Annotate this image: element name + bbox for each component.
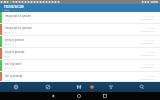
staticText: 09:44	[5, 67, 10, 70]
staticText: 09:44	[5, 55, 10, 58]
button[interactable]: ssh is gestopt	[0, 72, 160, 82]
staticText: imap-pop3 is gestopt	[5, 26, 32, 30]
staticText: systeem logging	[140, 30, 155, 33]
button[interactable]: Storage	[72, 82, 86, 92]
button[interactable]: smtp is gestart	[0, 36, 160, 48]
staticText: admin	[4, 9, 10, 11]
button[interactable]: Home	[70, 92, 88, 100]
staticText: 27-11-2017	[145, 75, 155, 78]
button[interactable]: ssh is gestart	[0, 60, 160, 72]
button[interactable]: Network	[9, 82, 23, 92]
staticText: 27-11-2017	[145, 27, 155, 30]
staticText: 27-11-2017	[145, 39, 155, 42]
button[interactable]: Recents	[96, 92, 114, 100]
button[interactable]: Block	[41, 82, 55, 92]
staticText: imap-pop3 is gestart	[5, 14, 32, 18]
staticText: ssh is gestart	[5, 62, 22, 66]
staticText: 09:44	[5, 19, 10, 22]
button[interactable]: Back	[44, 92, 62, 100]
staticText: systeem logging	[140, 78, 155, 81]
staticText: smtp is gestopt	[5, 50, 25, 54]
staticText: smtp is gestart	[5, 38, 24, 42]
staticText: 09:44	[5, 79, 10, 82]
button[interactable]: Users	[104, 82, 118, 92]
staticText: systeem logging	[140, 42, 155, 45]
staticText: 27-11-2017	[145, 15, 155, 18]
staticText: 09:44	[5, 43, 10, 46]
staticText: 27-11-2017	[145, 63, 155, 66]
staticText: 27-11-2017	[145, 51, 155, 54]
staticText: systeem logging	[140, 66, 155, 69]
button[interactable]: Status	[85, 82, 99, 92]
button[interactable]: imap-pop3 is gestopt	[0, 24, 160, 36]
button[interactable]: imap-pop3 is gestart	[0, 12, 160, 24]
button[interactable]: smtp is gestopt	[0, 48, 160, 60]
button[interactable]: Search	[135, 82, 149, 92]
staticText: 09:44	[5, 31, 10, 34]
staticText: systeem logging	[140, 54, 155, 57]
button[interactable]: 192.168.167.229	[0, 4, 160, 12]
staticText: 192.168.167.229	[4, 5, 24, 8]
staticText: systeem logging	[140, 18, 155, 21]
staticText: ssh is gestopt	[5, 74, 23, 78]
